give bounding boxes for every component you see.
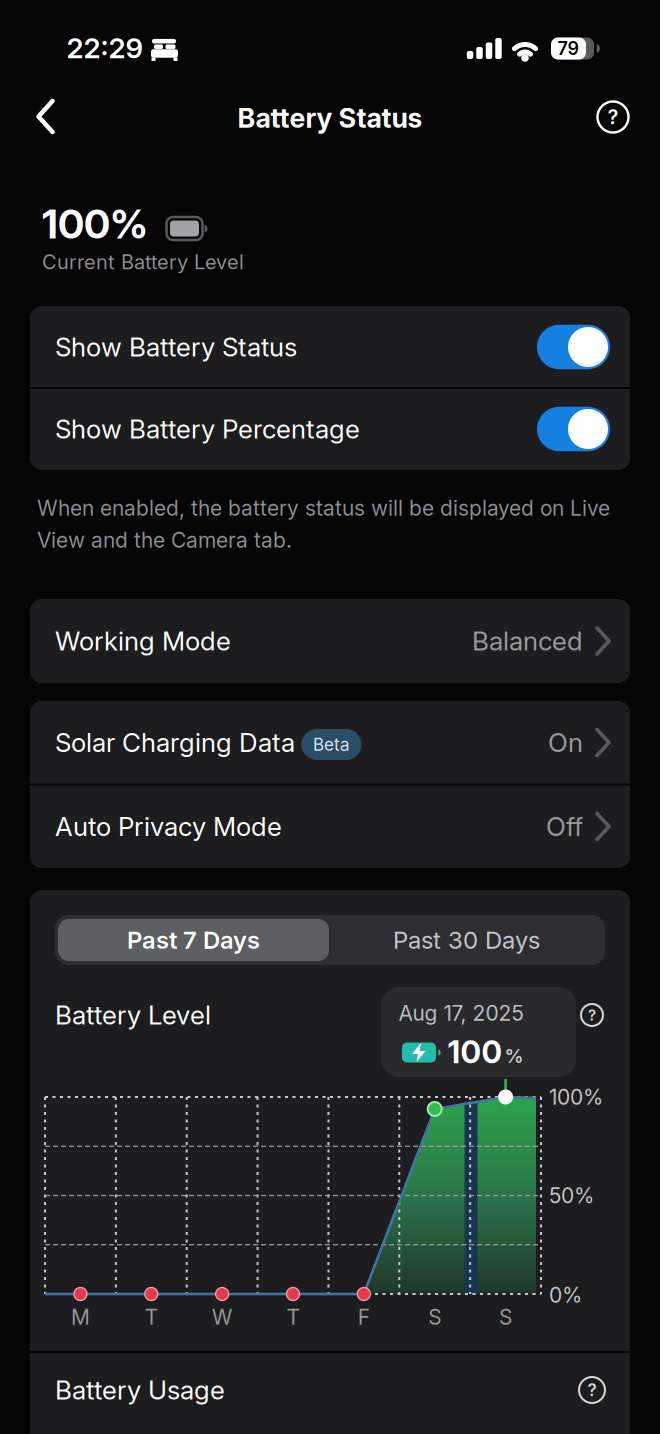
button[interactable]: Show Battery Percentage	[30, 388, 630, 470]
staticText: 100	[447, 1033, 502, 1071]
staticText: S	[499, 1304, 512, 1330]
staticText: 0%	[549, 1282, 582, 1308]
staticText: 100%	[42, 200, 148, 248]
staticText: %	[504, 1044, 523, 1067]
staticText: Off	[546, 811, 583, 842]
button[interactable]: Help	[591, 95, 635, 139]
button[interactable]: Working Mode	[30, 599, 630, 683]
staticText: 50%	[549, 1183, 594, 1208]
button[interactable]: Solar Charging Data	[30, 701, 630, 784]
button[interactable]: Battery Usage	[30, 1353, 630, 1434]
staticText: Auto Privacy Mode	[55, 811, 282, 842]
staticText: Show Battery Percentage	[55, 413, 360, 445]
staticText: ?	[588, 1006, 596, 1024]
staticText: 22:29	[66, 31, 143, 65]
staticText: Beta	[313, 734, 350, 755]
staticText: ?	[607, 105, 618, 129]
staticText: Balanced	[472, 625, 583, 657]
staticText: Battery Level	[55, 999, 211, 1031]
staticText: When enabled, the battery status will be…	[37, 495, 610, 521]
button[interactable]: Battery level info	[574, 997, 610, 1033]
staticText: Battery Usage	[55, 1374, 225, 1406]
button[interactable]: Past 7 Days	[56, 915, 331, 965]
staticText: Past 7 Days	[127, 925, 260, 954]
staticText: Aug 17, 2025	[398, 1000, 523, 1026]
staticText: 79	[557, 38, 579, 59]
staticText: View and the Camera tab.	[37, 527, 292, 553]
staticText: F	[358, 1304, 370, 1330]
staticText: ?	[587, 1380, 596, 1400]
staticText: M	[71, 1304, 90, 1330]
staticText: Current Battery Level	[42, 250, 244, 274]
staticText: W	[212, 1304, 233, 1330]
staticText: T	[145, 1304, 158, 1330]
staticText: Battery Status	[237, 102, 422, 134]
staticText: 100%	[549, 1084, 603, 1110]
staticText: Past 30 Days	[393, 925, 540, 954]
button[interactable]: Past 30 Days	[329, 915, 604, 965]
button[interactable]: Show Battery Status	[30, 306, 630, 388]
staticText: On	[548, 727, 583, 758]
staticText: Show Battery Status	[55, 331, 297, 363]
button[interactable]: Auto Privacy Mode	[30, 785, 630, 868]
staticText: Working Mode	[55, 625, 231, 657]
staticText: Solar Charging Data	[55, 727, 295, 758]
staticText: T	[286, 1304, 299, 1330]
button[interactable]: Back	[25, 92, 65, 140]
staticText: S	[428, 1304, 441, 1330]
